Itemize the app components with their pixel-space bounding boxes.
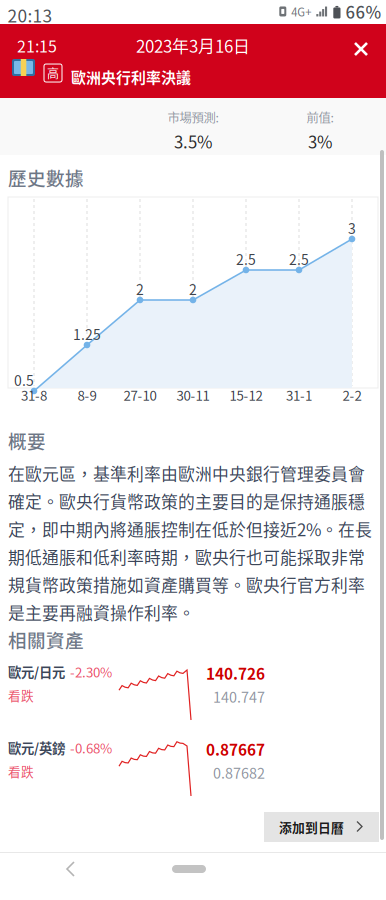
staticText: 0.87682	[213, 762, 265, 783]
staticText: 2	[189, 279, 197, 299]
staticText: -0.68%	[70, 738, 112, 757]
staticText: 0.87667	[206, 738, 265, 760]
button[interactable]: Back	[50, 852, 98, 886]
staticText: 2.5	[289, 249, 309, 269]
staticText: 在歐元區，基準利率由歐洲中央銀行管理委員會確定。歐央行貨幣政策的主要目的是保持通…	[8, 461, 372, 624]
staticText: 0.5	[14, 370, 34, 390]
staticText: 31-8	[21, 385, 47, 405]
staticText: 歷史數據	[8, 164, 84, 191]
staticText: 4G+	[291, 3, 311, 20]
staticText: 21:15	[17, 34, 57, 57]
staticText: 2.5	[236, 249, 256, 269]
staticText: 歐元/日元	[8, 662, 65, 681]
staticText: 相關資產	[8, 626, 84, 653]
staticText: -2.30%	[70, 662, 112, 681]
staticText: 2-2	[342, 385, 361, 405]
staticText: 歐洲央行利率決議	[71, 66, 191, 88]
staticText: 3%	[308, 129, 332, 153]
staticText: 140.726	[206, 662, 265, 684]
button[interactable]: Close	[341, 32, 381, 66]
staticText: 看跌	[8, 762, 34, 780]
staticText: 添加到日曆	[279, 818, 344, 836]
button[interactable]: 歐元/日元	[0, 658, 386, 732]
staticText: 3	[348, 218, 356, 238]
staticText: 高	[47, 64, 59, 82]
staticText: 市場預測:	[167, 108, 218, 126]
staticText: 15-12	[229, 385, 262, 405]
staticText: 2023年3月16日	[136, 33, 250, 57]
staticText: 20:13	[7, 2, 52, 28]
button[interactable]: 添加到日曆	[264, 812, 379, 842]
staticText: 30-11	[176, 385, 209, 405]
button[interactable]: 歐元/英鎊	[0, 734, 386, 808]
staticText: 140.747	[213, 686, 265, 707]
staticText: 27-10	[123, 385, 156, 405]
staticText: 66%	[345, 0, 381, 23]
staticText: 1.25	[73, 324, 101, 344]
staticText: 歐元/英鎊	[8, 738, 65, 757]
staticText: 3.5%	[174, 129, 212, 153]
staticText: 前值:	[306, 108, 333, 126]
staticText: 31-1	[286, 385, 312, 405]
staticText: 8-9	[77, 385, 96, 405]
staticText: 看跌	[8, 686, 34, 704]
staticText: 概要	[8, 427, 46, 454]
staticText: 2	[136, 279, 144, 299]
